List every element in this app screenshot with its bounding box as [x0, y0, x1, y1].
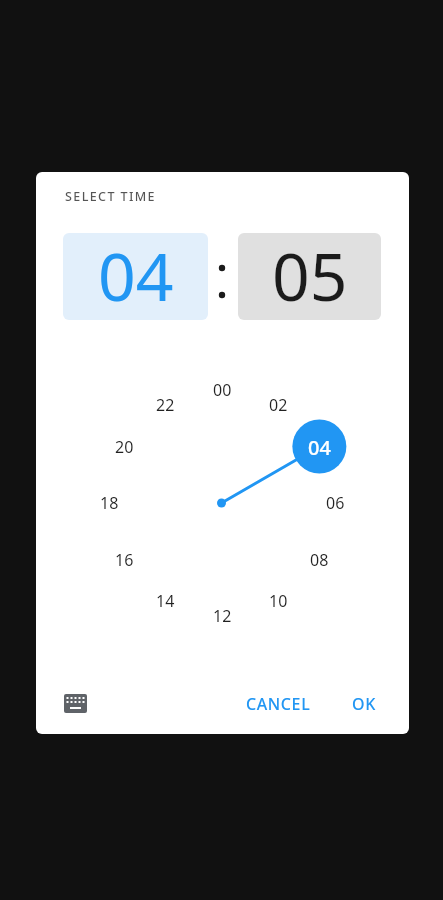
staticText: 00: [213, 379, 232, 401]
button[interactable]: 02: [258, 385, 298, 425]
button[interactable]: 18: [89, 483, 129, 523]
staticText: 08: [310, 549, 329, 571]
button[interactable]: 06: [315, 483, 355, 523]
button[interactable]: CANCEL: [233, 685, 323, 722]
staticText: 14: [156, 590, 175, 612]
button[interactable]: 00: [202, 370, 242, 410]
staticText: 20: [115, 436, 134, 458]
button[interactable]: [58, 688, 94, 718]
button[interactable]: 22: [145, 385, 185, 425]
button[interactable]: 20: [104, 427, 144, 467]
button[interactable]: 08: [299, 540, 339, 580]
staticText: CANCEL: [246, 693, 311, 715]
staticText: 02: [269, 394, 288, 416]
staticText: 05: [272, 233, 348, 317]
button[interactable]: 04: [292, 420, 346, 474]
button[interactable]: 12: [202, 596, 242, 636]
staticText: 04: [98, 233, 174, 317]
staticText: 18: [100, 492, 119, 514]
staticText: 12: [213, 605, 232, 627]
button[interactable]: 05: [238, 233, 381, 320]
button[interactable]: 10: [258, 581, 298, 621]
staticText: 04: [308, 434, 331, 461]
staticText: 22: [156, 394, 175, 416]
staticText: SELECT TIME: [65, 188, 156, 205]
button[interactable]: 14: [145, 581, 185, 621]
button[interactable]: OK: [334, 685, 394, 722]
staticText: 16: [115, 549, 134, 571]
staticText: OK: [352, 693, 376, 715]
button[interactable]: 04: [63, 233, 208, 320]
staticText: 10: [269, 590, 288, 612]
staticText: 06: [326, 492, 345, 514]
button[interactable]: 16: [104, 540, 144, 580]
